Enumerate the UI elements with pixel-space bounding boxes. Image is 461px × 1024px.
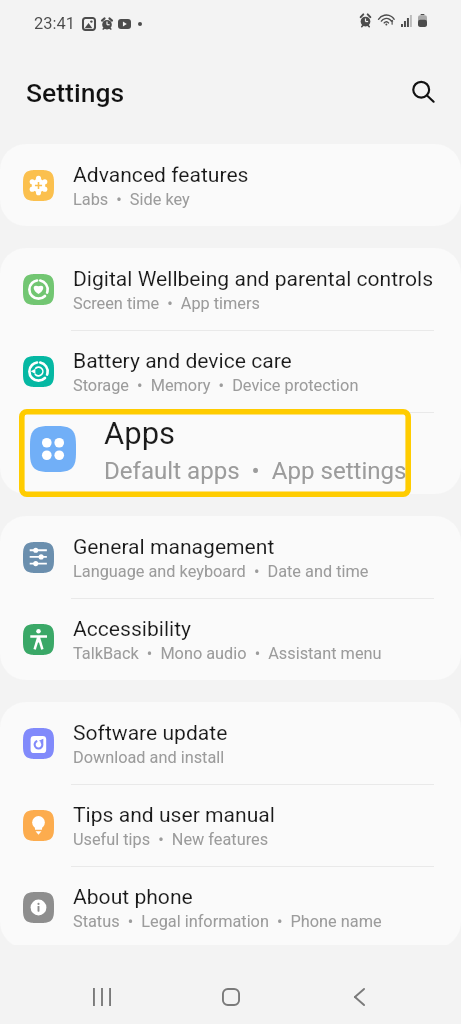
staticText: Tips and user manual — [73, 802, 275, 827]
staticText: Useful tips • New features — [73, 830, 269, 849]
button[interactable]: Home — [204, 970, 258, 1024]
button[interactable]: About phone — [0, 866, 461, 948]
staticText: Default apps • App settings — [104, 457, 407, 485]
staticText: Advanced features — [73, 162, 249, 187]
button[interactable]: General management — [0, 516, 461, 598]
staticText: Battery and device care — [73, 348, 292, 373]
staticText: Apps — [104, 415, 176, 451]
staticText: Storage • Memory • Device protection — [73, 376, 359, 395]
staticText: Digital Wellbeing and parental controls — [73, 266, 434, 291]
staticText: Screen time • App timers — [73, 294, 260, 313]
button[interactable]: Battery and device care — [0, 330, 461, 412]
staticText: Labs • Side key — [73, 190, 190, 209]
staticText: Status • Legal information • Phone name — [73, 912, 382, 931]
staticText: Accessibility — [73, 616, 192, 641]
button[interactable]: Back — [332, 970, 386, 1024]
staticText: Settings — [26, 77, 125, 108]
button[interactable]: Advanced features — [0, 144, 461, 226]
button[interactable]: Apps — [0, 412, 461, 494]
button[interactable]: Tips and user manual — [0, 784, 461, 866]
staticText: TalkBack • Mono audio • Assistant menu — [73, 644, 382, 663]
staticText: About phone — [73, 884, 193, 909]
button[interactable]: Accessibility — [0, 598, 461, 680]
staticText: Software update — [73, 720, 228, 745]
button[interactable]: Digital Wellbeing and parental controls — [0, 248, 461, 330]
button[interactable]: Recent apps — [75, 970, 129, 1024]
staticText: General management — [73, 534, 275, 559]
staticText: 23:41 — [34, 14, 76, 33]
button[interactable]: Software update — [0, 702, 461, 784]
staticText: Download and install — [73, 748, 225, 767]
staticText: Language and keyboard • Date and time — [73, 562, 369, 581]
button[interactable]: Search — [402, 71, 444, 113]
